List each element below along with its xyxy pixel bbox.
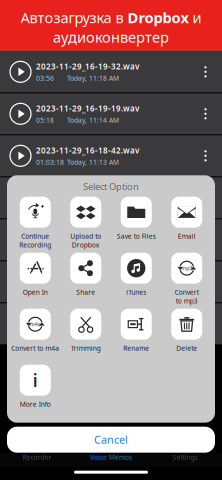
button[interactable]: Open In [10, 253, 60, 303]
button[interactable]: Cancel [7, 427, 215, 453]
staticText: Trimming [71, 344, 101, 353]
staticText: 2023-11-29_16-19-19.wav [36, 103, 139, 114]
staticText: Continue [21, 232, 49, 241]
staticText: Email [178, 232, 196, 241]
staticText: Upload to [70, 232, 101, 241]
button[interactable]: Recorder [0, 452, 74, 469]
staticText: More Info [20, 400, 51, 409]
button[interactable]: 2023-11-29_16-18-12.wav [0, 177, 222, 218]
staticText: Open In [23, 288, 48, 297]
staticText: Voice Memos [90, 453, 132, 462]
staticText: Recording [19, 241, 51, 249]
staticText: 2023-11-29_16-17-02.wav [36, 229, 139, 240]
staticText: 03:56 [36, 74, 54, 83]
button[interactable]: 2023-11-29_16-19-19.wav [0, 93, 222, 134]
staticText: m4a [30, 321, 41, 328]
staticText: Автозагрузка в Dropbox и [20, 8, 201, 27]
staticText: 05:18 [36, 116, 54, 125]
staticText: 2023-11-29_16-18-42.wav [36, 145, 139, 156]
staticText: Save to Files [117, 232, 156, 241]
staticText: Dropbox [72, 241, 100, 249]
button[interactable]: iTunes [111, 253, 161, 303]
staticText: Today, 11:13 AM [67, 158, 119, 167]
button[interactable]: Rename [111, 309, 161, 359]
staticText: 12:36 [36, 200, 54, 209]
staticText: 2023-11-29_16-14-12.wav [36, 313, 139, 324]
staticText: iTunes [126, 288, 146, 297]
staticText: 12:36 [36, 242, 54, 251]
button[interactable]: Delete [161, 309, 212, 359]
staticText: Recorder [22, 453, 51, 462]
button[interactable]: mp3 [161, 253, 212, 303]
staticText: Share [76, 288, 95, 297]
button[interactable]: 2023-11-29_16-14-12.wav [0, 303, 222, 344]
button[interactable]: Settings [148, 452, 222, 469]
staticText: 02:36 [36, 284, 54, 293]
staticText: Cancel [94, 433, 128, 447]
staticText: Delete [176, 344, 197, 353]
button[interactable]: Continue [10, 197, 60, 247]
button[interactable]: Email [161, 197, 212, 247]
staticText: Today, 11:10 AM [67, 326, 119, 335]
staticText: 2023-11-29_16-16-22.wav [36, 271, 139, 282]
button[interactable]: i [10, 365, 60, 415]
staticText: Today, 11:12 AM [67, 200, 119, 209]
button[interactable]: 2023-11-29_16-18-42.wav [0, 135, 222, 176]
staticText: i [33, 369, 38, 392]
staticText: to mp3 [176, 297, 198, 305]
staticText: 01:03:18 [36, 158, 64, 167]
staticText: 2023-11-29_16-18-12.wav [36, 187, 139, 198]
staticText: Settings [172, 453, 197, 462]
staticText: Rename [123, 344, 149, 353]
button[interactable]: Trimming [60, 309, 111, 359]
staticText: Today, 11:18 AM [67, 74, 119, 83]
staticText: Today, 11:12 AM [67, 242, 119, 251]
button[interactable]: 2023-11-29_16-19-32.wav [0, 51, 222, 92]
staticText: Today, 11:11 AM [67, 284, 119, 293]
button[interactable]: Upload to [60, 197, 111, 247]
button[interactable]: Save to Files [111, 197, 161, 247]
button[interactable]: 2023-11-29_16-17-02.wav [0, 219, 222, 260]
button[interactable]: Share [60, 253, 111, 303]
staticText: 12:36 [36, 326, 54, 335]
staticText: аудиоконвертер [53, 27, 169, 47]
staticText: Select Option [83, 180, 139, 193]
staticText: Convert to m4a [11, 344, 59, 353]
staticText: Today, 11:14 AM [67, 116, 119, 125]
staticText: Convert [175, 288, 199, 297]
staticText: 2023-11-29_16-19-32.wav [36, 61, 139, 72]
button[interactable]: Voice Memos [74, 452, 148, 469]
button[interactable]: 2023-11-29_16-16-22.wav [0, 261, 222, 302]
button[interactable]: m4a [10, 309, 60, 359]
staticText: mp3 [181, 265, 192, 272]
